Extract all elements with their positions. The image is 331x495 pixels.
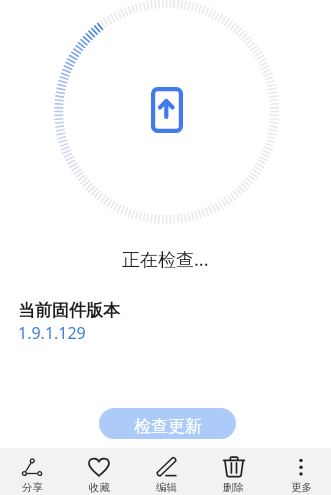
other: Firmware update (145, 80, 189, 140)
button[interactable]: 编辑 (138, 448, 194, 495)
staticText: 当前固件版本 (18, 300, 120, 321)
staticText: 检查更新 (134, 416, 202, 437)
staticText: 分享 (22, 481, 43, 494)
staticText: 正在检查... (122, 247, 209, 269)
staticText: 1.9.1.129 (18, 322, 86, 344)
button[interactable]: 分享 (4, 448, 60, 495)
staticText: 收藏 (89, 481, 110, 494)
button[interactable]: 收藏 (71, 448, 127, 495)
button[interactable]: 删除 (205, 448, 261, 495)
staticText: 编辑 (156, 481, 177, 494)
staticText: 删除 (223, 481, 244, 494)
staticText: 更多 (291, 481, 312, 494)
button[interactable]: 更多 (273, 448, 329, 495)
button[interactable]: 检查更新 (99, 408, 236, 439)
